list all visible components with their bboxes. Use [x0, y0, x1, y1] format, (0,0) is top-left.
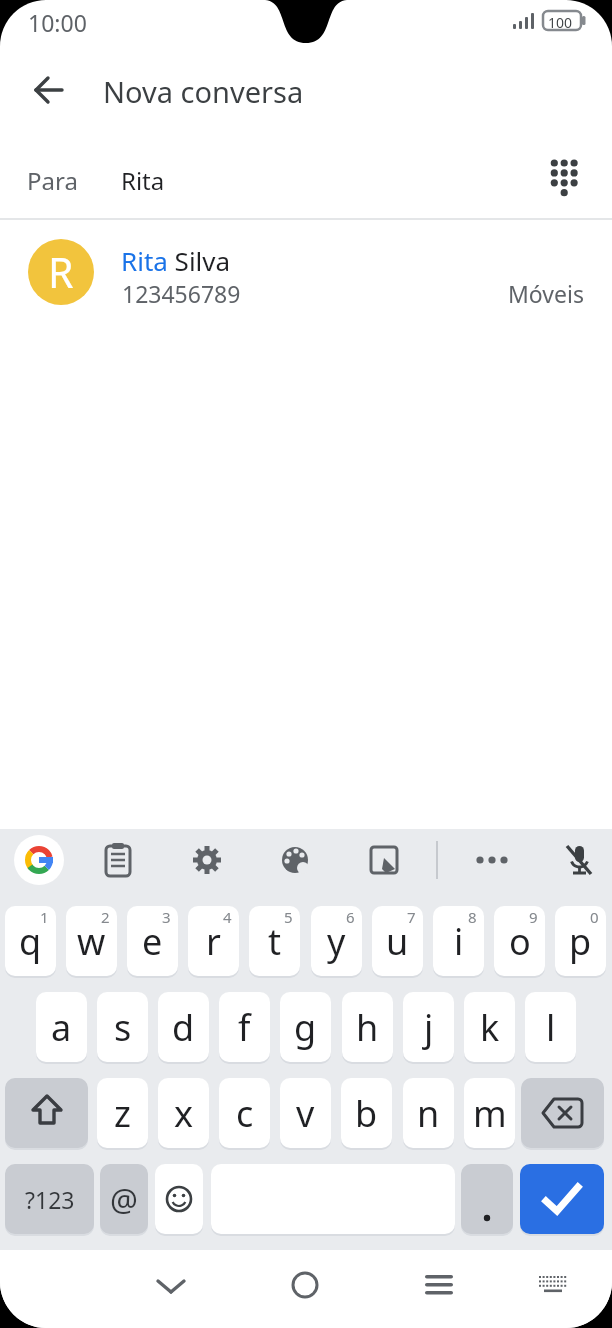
staticText: ?123 — [25, 1184, 75, 1215]
staticText: u — [386, 917, 409, 966]
button[interactable]: m — [464, 1078, 515, 1148]
staticText: h — [356, 1003, 379, 1052]
staticText: n — [417, 1089, 440, 1138]
button[interactable] — [275, 840, 315, 880]
staticText: o — [509, 917, 531, 966]
button[interactable]: @ — [100, 1164, 148, 1234]
button[interactable] — [559, 840, 599, 880]
button[interactable] — [5, 1078, 88, 1148]
staticText: Móveis — [508, 278, 584, 309]
staticText: w — [77, 917, 106, 966]
button[interactable]: w — [66, 906, 117, 976]
button[interactable]: r — [188, 906, 239, 976]
staticText: 8 — [468, 907, 477, 927]
button[interactable]: k — [464, 992, 515, 1062]
button[interactable]: l — [525, 992, 576, 1062]
button[interactable]: h — [342, 992, 393, 1062]
button[interactable]: y — [311, 906, 362, 976]
staticText: q — [19, 917, 42, 966]
staticText: 0 — [590, 907, 599, 927]
staticText: 6 — [346, 907, 355, 927]
staticText: b — [355, 1089, 378, 1138]
staticText: Rita — [121, 164, 165, 197]
staticText: i — [454, 917, 464, 966]
button[interactable]: n — [403, 1078, 454, 1148]
staticText: r — [206, 917, 221, 966]
staticText: p — [569, 917, 592, 966]
button[interactable]: t — [249, 906, 300, 976]
staticText: 3 — [162, 907, 171, 927]
staticText: s — [114, 1003, 132, 1052]
staticText: c — [236, 1089, 254, 1138]
staticText: a — [51, 1003, 72, 1052]
button[interactable]: g — [280, 992, 331, 1062]
staticText: t — [268, 917, 281, 966]
staticText: 123456789 — [122, 278, 241, 309]
button[interactable] — [415, 1261, 463, 1309]
button[interactable]: f — [219, 992, 270, 1062]
button[interactable] — [364, 840, 404, 880]
staticText: 1 — [40, 907, 49, 927]
button[interactable] — [529, 1261, 577, 1309]
button[interactable] — [520, 1164, 604, 1234]
staticText: 5 — [284, 907, 293, 927]
staticText: Nova conversa — [103, 72, 304, 111]
button[interactable]: ?123 — [5, 1164, 94, 1234]
staticText: d — [172, 1003, 195, 1052]
staticText: g — [294, 1003, 317, 1052]
button[interactable]: z — [97, 1078, 148, 1148]
button[interactable] — [461, 1164, 513, 1234]
button[interactable] — [98, 840, 138, 880]
button[interactable]: p — [555, 906, 606, 976]
staticText: v — [296, 1089, 315, 1138]
button[interactable] — [155, 1164, 203, 1234]
button[interactable]: e — [127, 906, 178, 976]
button[interactable]: R — [0, 230, 612, 316]
button[interactable] — [521, 1078, 604, 1148]
button[interactable]: x — [158, 1078, 209, 1148]
button[interactable]: v — [280, 1078, 331, 1148]
staticText: 2 — [101, 907, 110, 927]
button[interactable]: a — [36, 992, 87, 1062]
button[interactable]: b — [341, 1078, 392, 1148]
button[interactable] — [14, 835, 64, 885]
staticText: z — [114, 1089, 131, 1138]
button[interactable] — [472, 840, 512, 880]
button[interactable]: s — [97, 992, 148, 1062]
staticText: 10:00 — [28, 7, 87, 38]
staticText: e — [142, 917, 163, 966]
staticText: l — [546, 1003, 556, 1052]
staticText: x — [174, 1089, 194, 1138]
button[interactable]: j — [403, 992, 454, 1062]
button[interactable] — [25, 66, 73, 114]
staticText: 100 — [548, 13, 573, 32]
staticText: 4 — [223, 907, 232, 927]
button[interactable] — [187, 840, 227, 880]
staticText: Para — [27, 164, 78, 197]
button[interactable]: u — [372, 906, 423, 976]
staticText: R — [48, 244, 74, 300]
staticText: 9 — [529, 907, 538, 927]
staticText: 7 — [407, 907, 416, 927]
staticText: m — [473, 1089, 507, 1138]
staticText: @ — [110, 1178, 138, 1220]
button[interactable]: i — [433, 906, 484, 976]
button[interactable]: q — [5, 906, 56, 976]
staticText: y — [327, 917, 346, 966]
button[interactable]: c — [219, 1078, 270, 1148]
button[interactable] — [540, 153, 588, 203]
staticText: j — [424, 1003, 434, 1052]
button[interactable]: o — [494, 906, 545, 976]
button[interactable] — [147, 1261, 195, 1309]
staticText: k — [480, 1003, 500, 1052]
button[interactable]: d — [158, 992, 209, 1062]
staticText: f — [238, 1003, 251, 1052]
button[interactable] — [281, 1261, 329, 1309]
staticText: Rita Silva — [121, 243, 231, 278]
